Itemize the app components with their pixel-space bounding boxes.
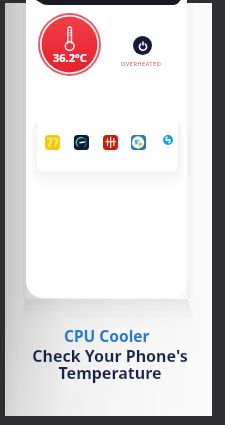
button[interactable]: App	[74, 135, 89, 150]
staticText: CPU Cooler	[64, 325, 150, 346]
button[interactable]: Power	[133, 36, 152, 55]
button[interactable]: App	[45, 135, 60, 150]
staticText: OVERHEATED	[118, 60, 164, 68]
button[interactable]: Skype	[163, 135, 173, 145]
staticText: Check Your Phone's Temperature	[32, 345, 188, 384]
staticText: 36.2°C	[53, 50, 87, 65]
button[interactable]: Temperature	[38, 13, 101, 76]
button[interactable]: App	[131, 135, 146, 150]
button[interactable]: App	[103, 135, 118, 150]
